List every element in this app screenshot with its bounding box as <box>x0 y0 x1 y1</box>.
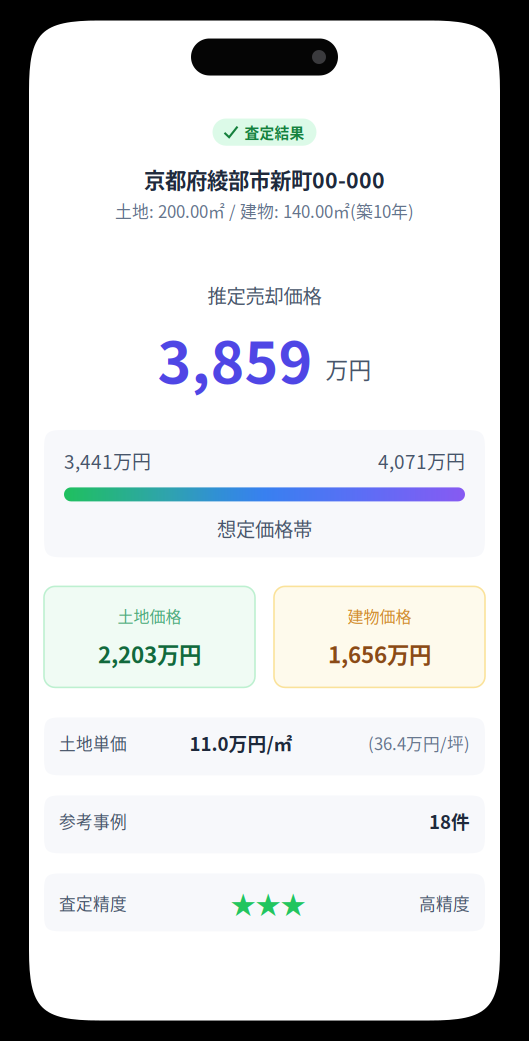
staticText: ★★★ <box>230 884 305 921</box>
staticText: 2,203万円 <box>98 637 201 670</box>
staticText: 万円 <box>325 352 371 385</box>
staticText: 高精度 <box>419 891 470 915</box>
staticText: 想定価格帯 <box>217 514 312 542</box>
staticText: 土地: 200.00㎡ / 建物: 140.00㎡(築10年) <box>115 199 414 223</box>
button[interactable]: 参考事例 <box>44 795 485 853</box>
staticText: (36.4万円/坪) <box>368 731 470 755</box>
staticText: 土地価格 <box>117 604 181 627</box>
staticText: 3,441万円 <box>64 447 151 474</box>
button[interactable]: 建物価格 <box>274 586 485 687</box>
staticText: 査定結果 <box>244 121 304 143</box>
staticText: 参考事例 <box>59 809 127 833</box>
staticText: 推定売却価格 <box>207 281 321 309</box>
staticText: 11.0万円/㎡ <box>189 729 292 756</box>
staticText: 1,656万円 <box>328 637 431 670</box>
staticText: 18件 <box>429 807 470 834</box>
staticText: 建物価格 <box>347 604 411 627</box>
staticText: 3,859 <box>157 317 312 400</box>
button[interactable]: 査定結果 <box>212 118 316 146</box>
button[interactable]: 査定精度 <box>44 873 485 931</box>
button[interactable]: 土地単価 <box>44 717 485 775</box>
staticText: 京都府綾部市新町00-000 <box>144 164 385 195</box>
staticText: 4,071万円 <box>378 447 465 474</box>
staticText: 査定精度 <box>59 891 127 915</box>
staticText: 土地単価 <box>59 731 127 755</box>
button[interactable]: 土地価格 <box>44 586 255 687</box>
